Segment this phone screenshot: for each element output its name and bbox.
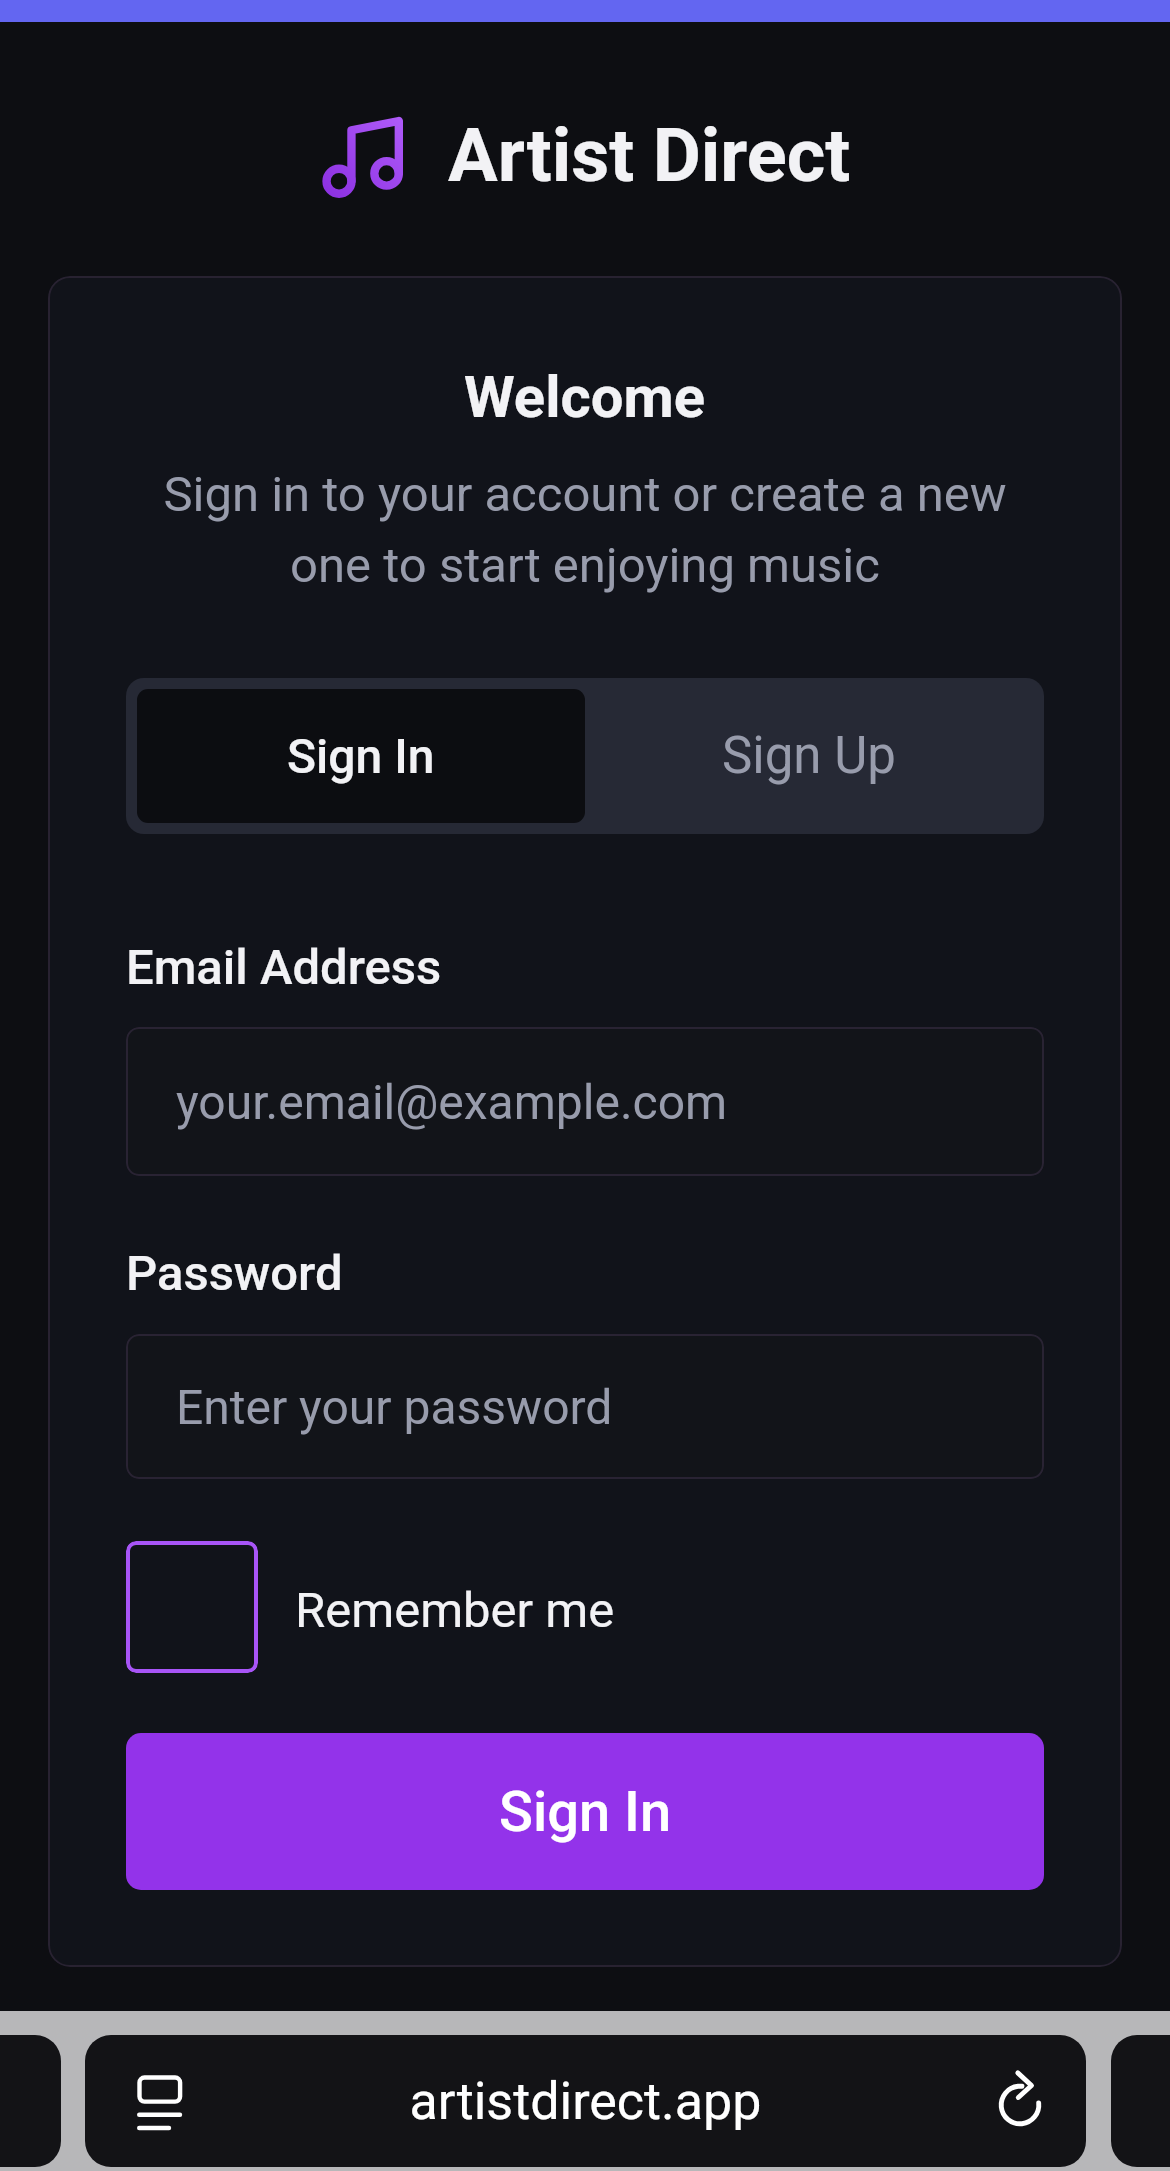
staticText: Sign in to your account or create a new … <box>126 466 1044 594</box>
staticText: Remember me <box>295 1582 615 1639</box>
other: Artist Direct logo <box>323 115 403 198</box>
staticText: Password <box>126 1245 343 1302</box>
staticText: Sign Up <box>722 726 896 786</box>
staticText: Welcome <box>464 363 706 431</box>
button[interactable]: Reader view <box>96 2035 224 2167</box>
button[interactable]: Sign Up <box>585 689 1033 823</box>
button[interactable]: Sign In <box>137 689 585 823</box>
staticText: your.email@example.com <box>176 1074 728 1130</box>
button[interactable]: Sign In <box>126 1733 1044 1890</box>
button[interactable]: your.email@example.com <box>126 1027 1044 1176</box>
button[interactable]: Reload page <box>956 2035 1084 2167</box>
staticText: Email Address <box>126 939 442 996</box>
staticText: Sign In <box>287 728 435 784</box>
staticText: Artist Direct <box>448 112 851 199</box>
staticText: Enter your password <box>176 1379 613 1435</box>
button[interactable]: Enter your password <box>126 1334 1044 1479</box>
button[interactable]: artistdirect.app <box>85 2071 1086 2132</box>
staticText: Sign In <box>499 1779 672 1845</box>
button[interactable]: Remember me <box>126 1541 596 1673</box>
